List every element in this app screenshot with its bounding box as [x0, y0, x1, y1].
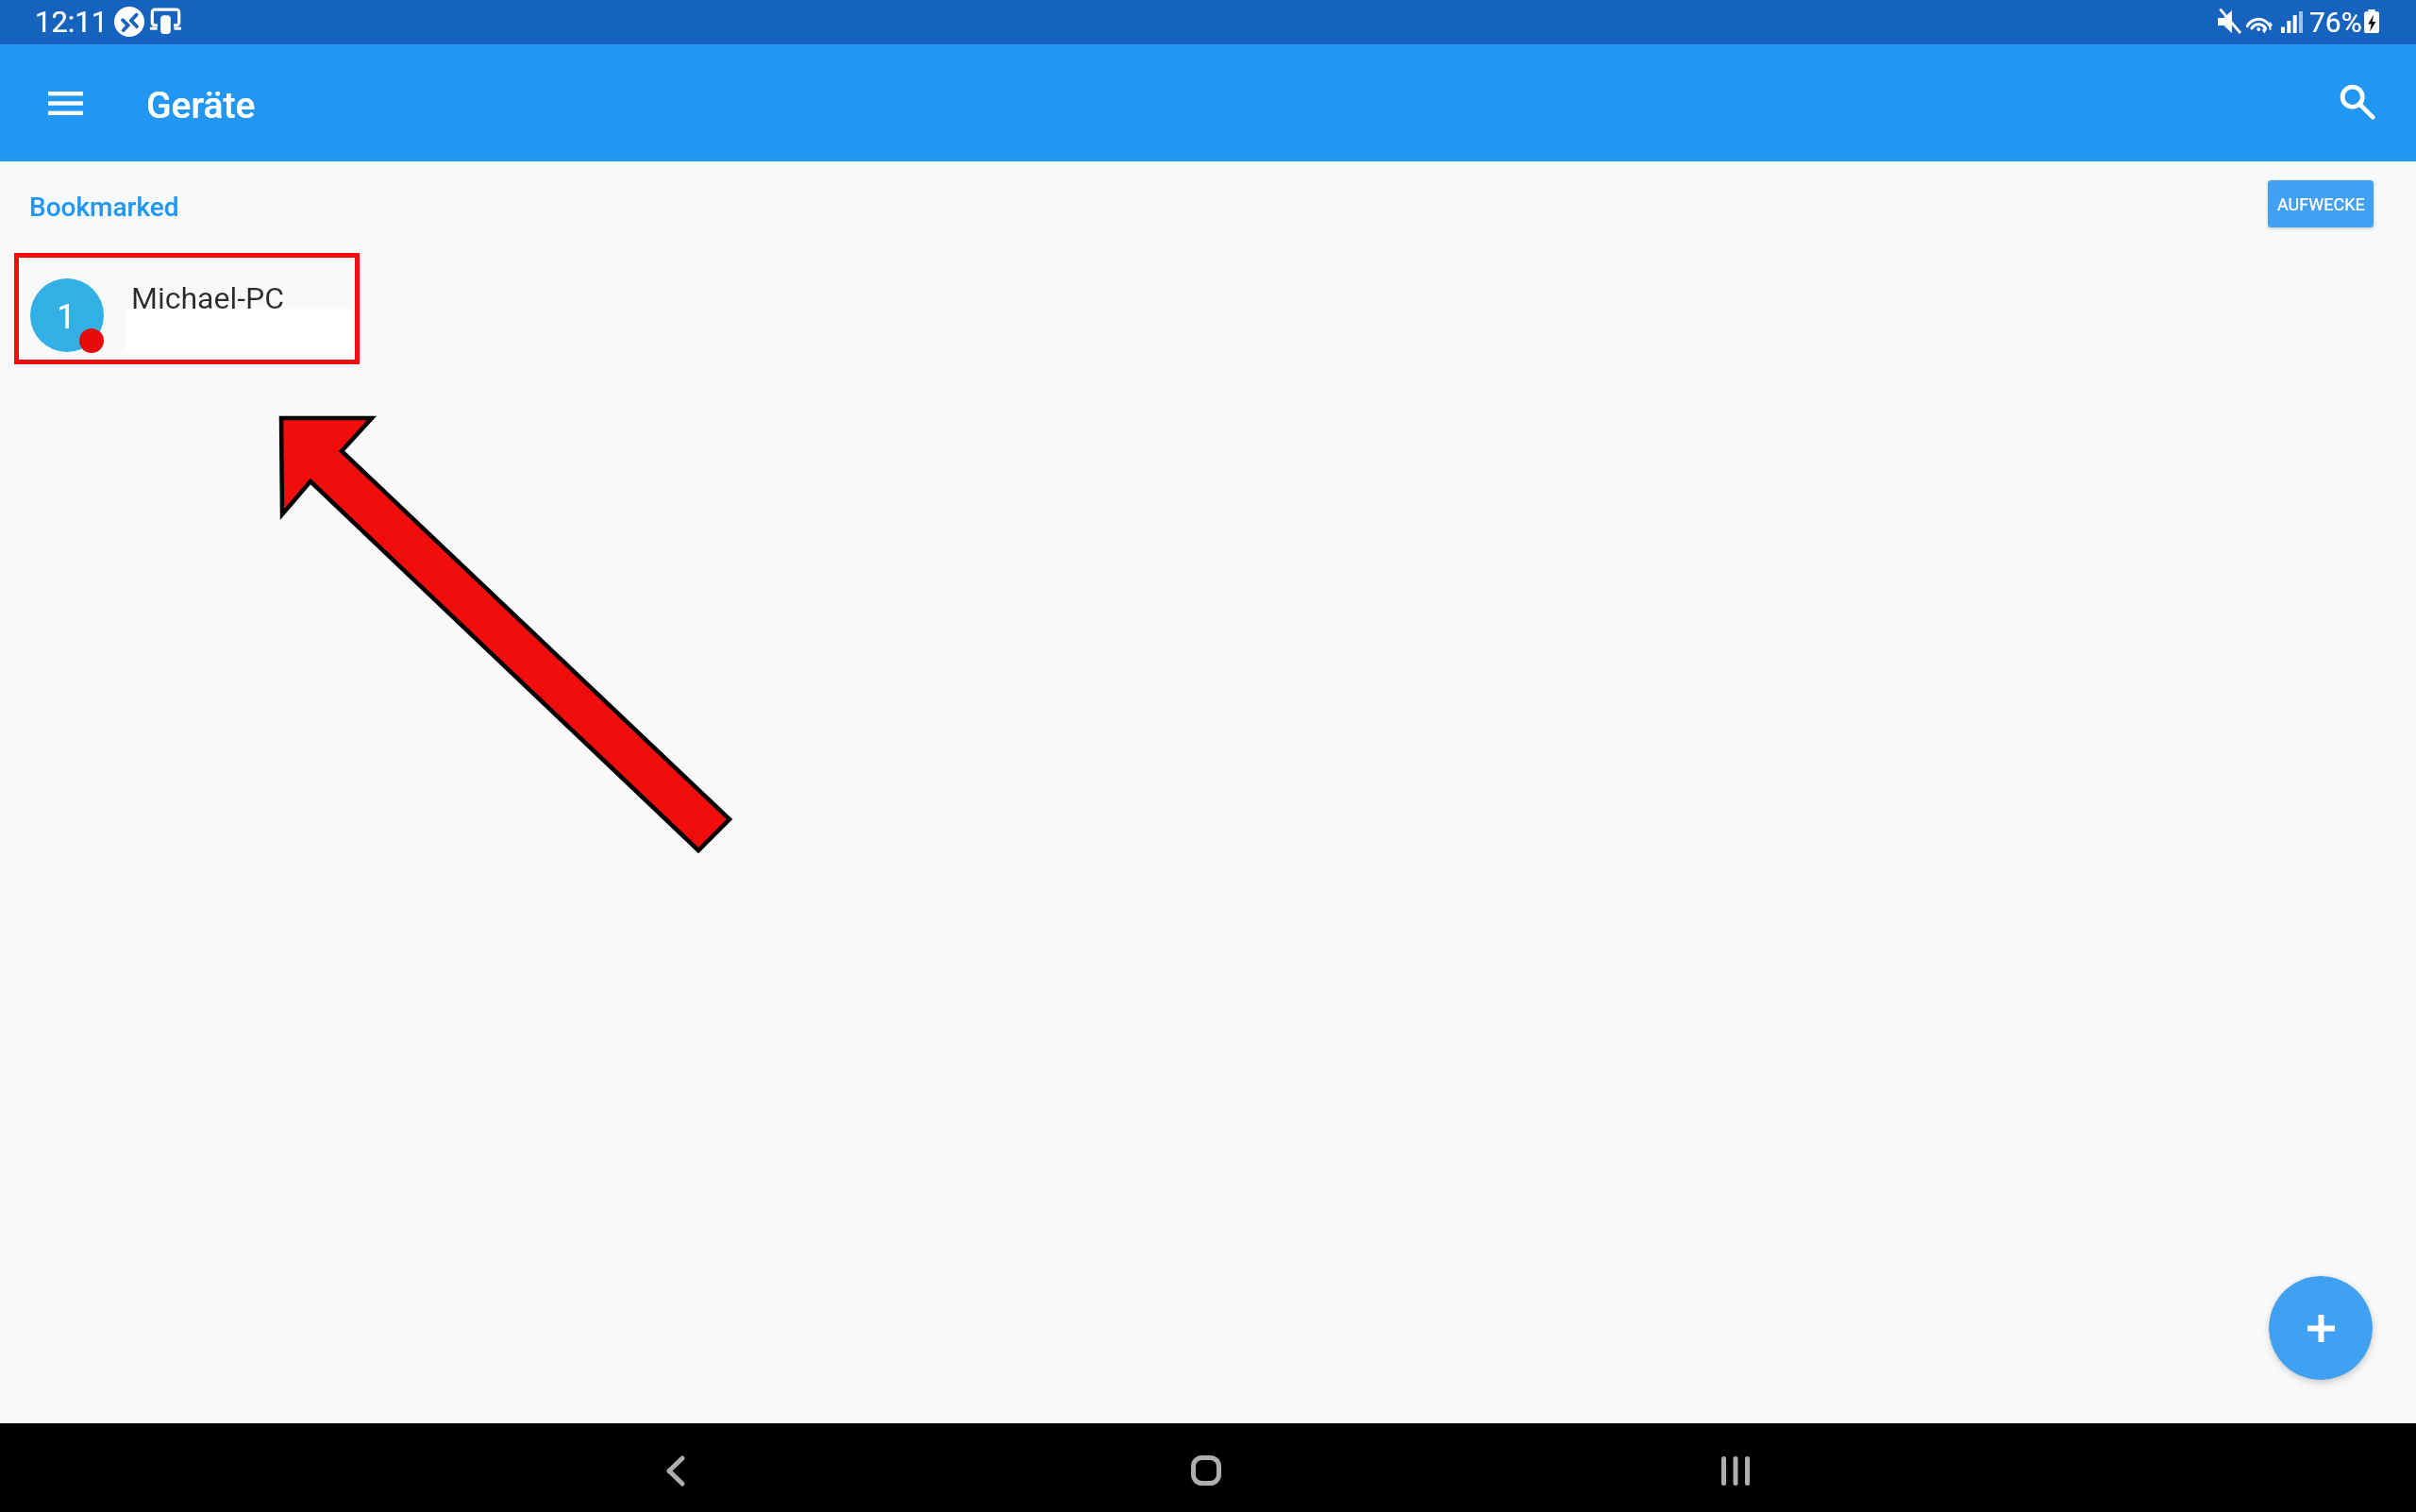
button[interactable]: Back — [633, 1428, 718, 1512]
button[interactable]: Add device — [2269, 1276, 2373, 1380]
staticText: Michael-PC — [131, 280, 285, 316]
button[interactable]: Search — [2314, 65, 2390, 141]
staticText: AUFWECKE — [2277, 194, 2365, 214]
button[interactable]: Recent apps — [1693, 1428, 1778, 1512]
staticText: 12:11 — [35, 5, 109, 39]
button[interactable]: Home — [1164, 1428, 1249, 1512]
button[interactable]: AUFWECKE — [2268, 180, 2374, 227]
staticText: 1 — [57, 297, 76, 337]
button[interactable]: 1 — [19, 258, 355, 360]
staticText: Geräte — [146, 84, 256, 127]
button[interactable]: Open navigation menu — [27, 65, 103, 141]
staticText: Bookmarked — [29, 192, 179, 223]
staticText: 76% — [2309, 6, 2362, 39]
